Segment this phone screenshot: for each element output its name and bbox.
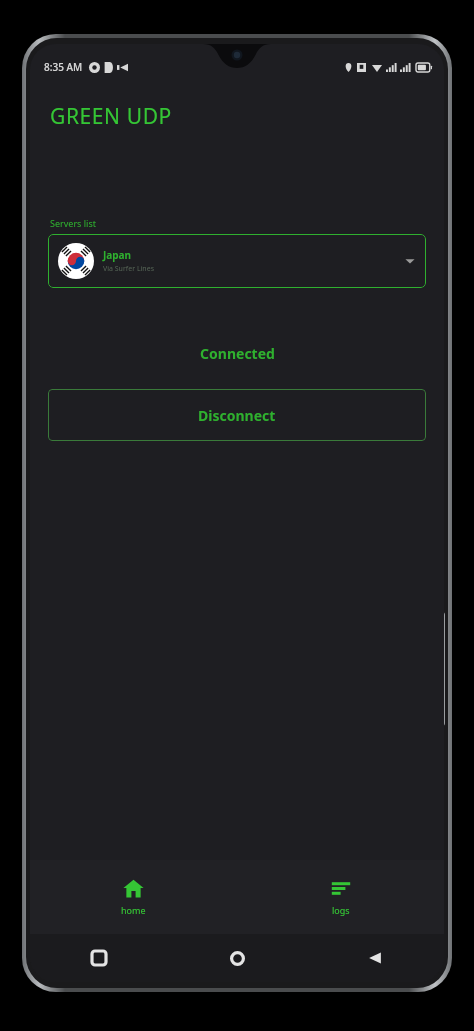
button[interactable]: Recent apps <box>30 934 168 982</box>
staticText: Connected <box>200 344 275 363</box>
button[interactable]: logs <box>237 860 444 934</box>
staticText: GREEN UDP <box>50 102 172 131</box>
staticText: Via Surfer Lines <box>103 264 154 274</box>
staticText: Disconnect <box>198 406 276 425</box>
staticText: Japan <box>103 248 132 262</box>
button[interactable]: Disconnect <box>48 389 426 441</box>
button[interactable]: Home <box>168 934 306 982</box>
staticText: logs <box>332 904 350 916</box>
other: Expand server list <box>404 255 416 267</box>
staticText: 8:35 AM <box>44 60 83 74</box>
button[interactable]: home <box>30 860 237 934</box>
staticText: Servers list <box>50 217 96 229</box>
staticText: home <box>121 904 146 916</box>
button[interactable]: Back <box>306 934 444 982</box>
button[interactable]: Japan <box>48 234 426 288</box>
